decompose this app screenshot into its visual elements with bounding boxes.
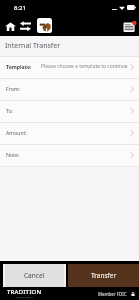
staticText: TRADITION [7, 288, 42, 296]
staticText: Amount: [6, 129, 27, 136]
button[interactable]: Transfers [18, 19, 32, 33]
button[interactable]: Amount: [0, 123, 139, 144]
button[interactable]: To: [0, 101, 139, 122]
button[interactable]: From: [0, 79, 139, 100]
staticText: Please choose a template to continue [41, 63, 128, 70]
staticText: Internal Transfer [5, 41, 61, 51]
staticText: To: [6, 107, 14, 114]
staticText: Cancel [24, 271, 45, 280]
staticText: Member FDIC [98, 291, 127, 297]
button[interactable]: Home [3, 19, 17, 33]
staticText: Note: [6, 151, 20, 158]
staticText: Template: [6, 63, 32, 70]
button[interactable]: Template: [0, 57, 139, 78]
button[interactable]: Transfer [68, 264, 139, 287]
button[interactable]: Accounts [37, 18, 52, 33]
button[interactable]: Note: [0, 145, 139, 166]
button[interactable]: Messages [121, 18, 137, 34]
staticText: Transfer [91, 271, 117, 280]
button[interactable]: Cancel [3, 264, 66, 287]
staticText: 6:21 [14, 4, 26, 12]
staticText: From: [6, 85, 21, 92]
staticText: CAPITAL BANK [16, 295, 33, 298]
